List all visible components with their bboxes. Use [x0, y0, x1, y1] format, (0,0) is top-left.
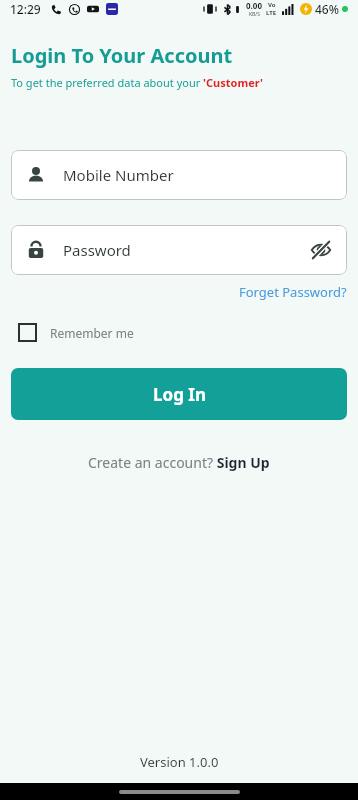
staticText: Create an account? Sign Up	[88, 453, 270, 472]
staticText: 0.00	[246, 0, 262, 11]
staticText: Remember me	[50, 325, 134, 341]
staticText: KB/S	[249, 11, 260, 18]
button[interactable]: Mobile Number	[11, 150, 347, 200]
staticText: Version 1.0.0	[140, 753, 219, 771]
staticText: 12:29	[10, 1, 41, 17]
staticText: To get the preferred data about your 'Cu…	[11, 75, 263, 90]
staticText: Vo	[268, 1, 276, 9]
staticText: Forget Password?	[239, 283, 347, 301]
staticText: Log In	[153, 383, 206, 406]
button[interactable]: Create an account? Sign Up	[80, 449, 278, 476]
button[interactable]: Remember me	[11, 319, 142, 346]
staticText: Mobile Number	[63, 165, 174, 185]
button[interactable]: Forget Password?	[239, 281, 358, 303]
staticText: LTE	[266, 9, 277, 17]
staticText: Login To Your Account	[11, 42, 233, 69]
staticText: 46%	[315, 1, 339, 17]
button[interactable]: Show password	[309, 238, 333, 262]
button[interactable]: Log In	[11, 368, 347, 420]
staticText: Password	[63, 240, 131, 260]
button[interactable]: Password	[11, 225, 347, 275]
